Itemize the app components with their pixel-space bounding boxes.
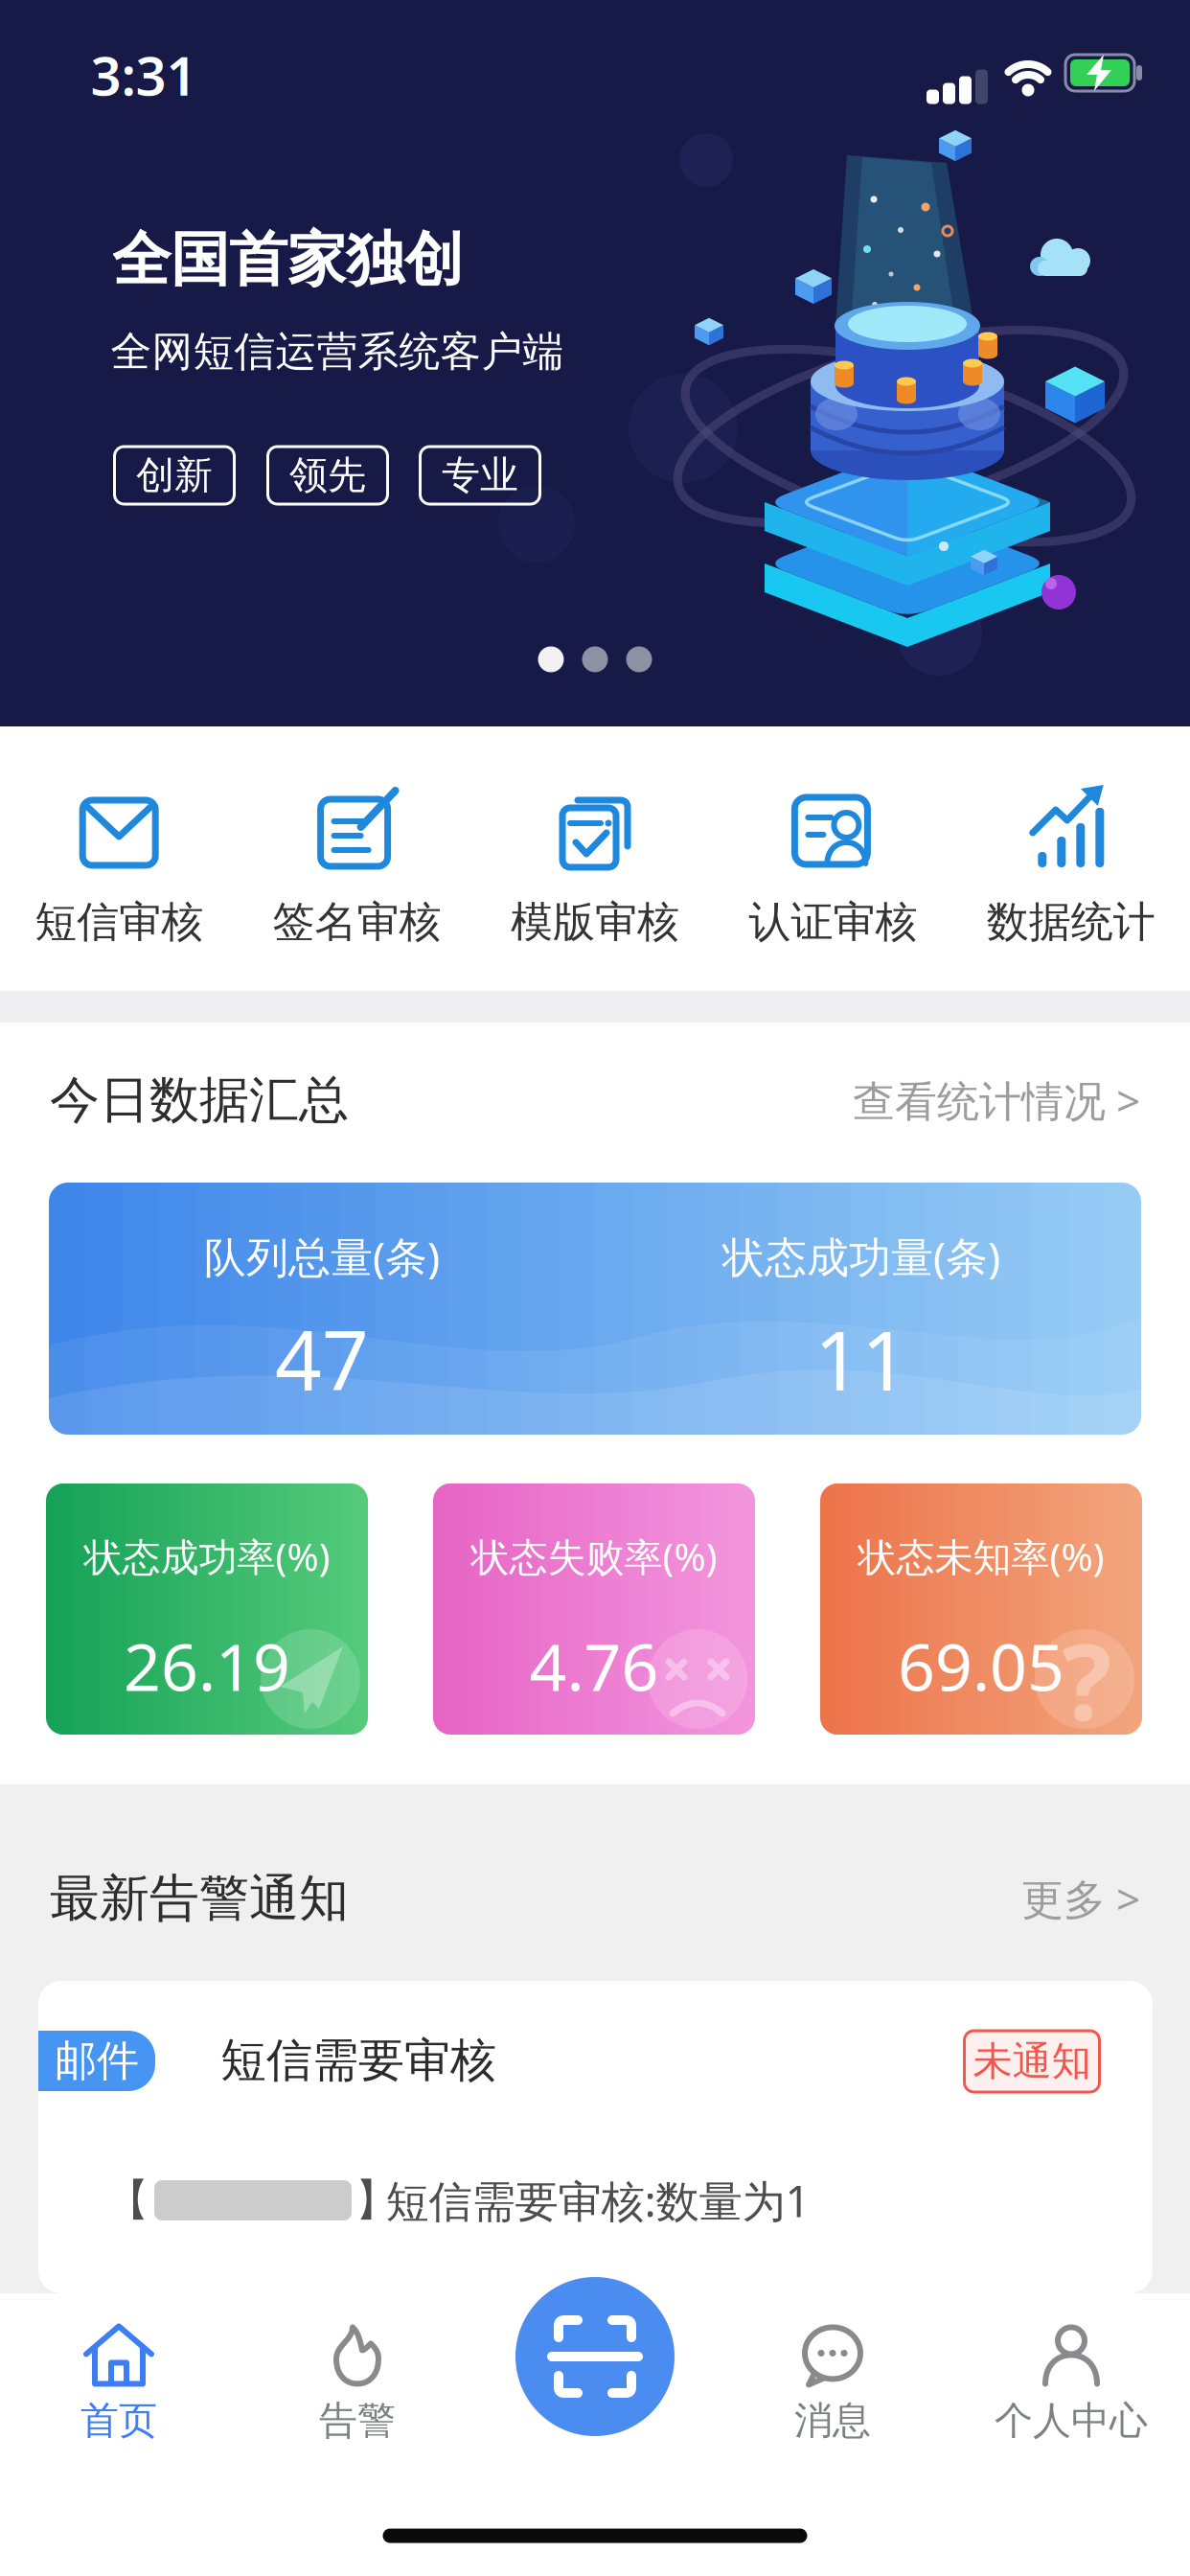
staticText: 短信审核 bbox=[35, 896, 203, 948]
staticText: 更多 > bbox=[1021, 1870, 1140, 1926]
staticText: 队列总量(条) bbox=[204, 1228, 440, 1284]
staticText: 4.76 bbox=[529, 1622, 659, 1709]
staticText: 11 bbox=[814, 1305, 908, 1413]
staticText: 专业 bbox=[442, 452, 518, 499]
button[interactable]: 个人中心 bbox=[966, 2312, 1177, 2456]
button[interactable]: 查看统计情况 > bbox=[853, 1072, 1140, 1128]
button[interactable]: 扫一扫 bbox=[515, 2277, 675, 2436]
button[interactable]: 模版审核 bbox=[476, 726, 714, 991]
staticText: 全网短信运营系统客户端 bbox=[111, 327, 564, 377]
button[interactable]: 数据统计 bbox=[952, 726, 1190, 991]
staticText: 认证审核 bbox=[749, 896, 917, 948]
button[interactable]: 消息 bbox=[746, 2312, 919, 2456]
staticText: 短信需要审核:数量为1 bbox=[386, 2171, 810, 2229]
staticText: 告警 bbox=[319, 2397, 396, 2444]
staticText: 3:31 bbox=[91, 39, 197, 110]
staticText: 全国首家独创 bbox=[112, 224, 463, 296]
staticText: 未通知 bbox=[973, 2037, 1091, 2086]
staticText: ? bbox=[1062, 1610, 1111, 1750]
staticText: 今日数据汇总 bbox=[50, 1070, 349, 1131]
button[interactable]: 告警 bbox=[271, 2312, 444, 2456]
button[interactable]: 短信审核 bbox=[0, 726, 238, 991]
staticText: 签名审核 bbox=[273, 896, 441, 948]
staticText: 数据统计 bbox=[987, 896, 1155, 948]
staticText: 模版审核 bbox=[511, 896, 679, 948]
staticText: 最新告警通知 bbox=[50, 1868, 349, 1929]
staticText: 47 bbox=[275, 1305, 369, 1413]
staticText: 查看统计情况 > bbox=[853, 1072, 1140, 1128]
staticText: 个人中心 bbox=[995, 2397, 1148, 2444]
staticText: 状态成功量(条) bbox=[722, 1228, 1000, 1284]
staticText: 创新 bbox=[136, 452, 213, 499]
staticText: 状态成功率(%) bbox=[84, 1531, 330, 1582]
staticText: 状态失败率(%) bbox=[471, 1531, 717, 1582]
staticText: 领先 bbox=[289, 452, 366, 499]
staticText: 26.19 bbox=[124, 1622, 290, 1709]
staticText: 】 bbox=[355, 2174, 398, 2227]
button[interactable]: 更多 > bbox=[1021, 1870, 1140, 1926]
button[interactable]: 首页 bbox=[33, 2312, 205, 2456]
staticText: 首页 bbox=[80, 2397, 157, 2444]
staticText: 【 bbox=[106, 2174, 149, 2227]
staticText: 状态未知率(%) bbox=[858, 1531, 1104, 1582]
staticText: 邮件 bbox=[55, 2035, 139, 2087]
button[interactable]: 邮件 bbox=[38, 1981, 1153, 2293]
staticText: 69.05 bbox=[898, 1622, 1064, 1709]
staticText: 短信需要审核 bbox=[220, 2032, 496, 2089]
button[interactable]: 签名审核 bbox=[238, 726, 476, 991]
button[interactable]: 认证审核 bbox=[714, 726, 952, 991]
staticText: 消息 bbox=[794, 2397, 871, 2444]
